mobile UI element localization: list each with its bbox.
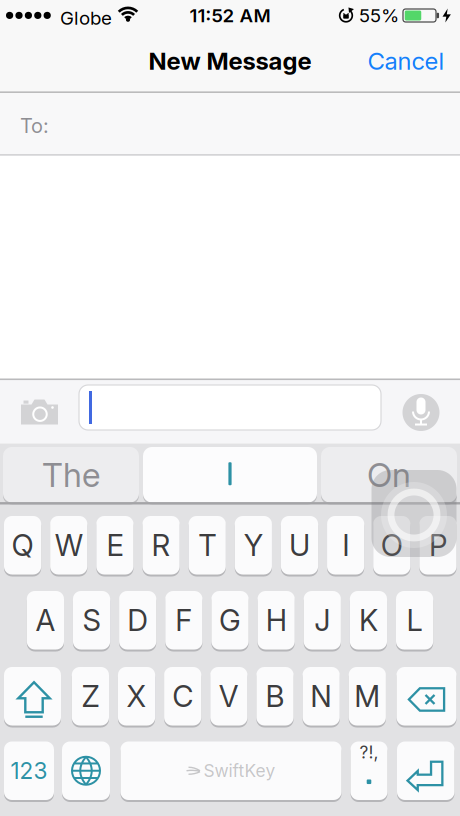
button[interactable]: Dictate (402, 394, 439, 431)
staticText: SwiftKey (203, 760, 275, 781)
staticText: 11:52 AM (189, 4, 270, 26)
staticText: To: (20, 114, 49, 138)
button[interactable]: F (165, 590, 202, 650)
button[interactable]: G (211, 590, 249, 650)
staticText: T (198, 528, 216, 562)
staticText: N (310, 679, 332, 713)
button[interactable]: S (73, 590, 110, 650)
staticText: New Message (148, 47, 311, 75)
button[interactable]: O (373, 515, 410, 575)
button[interactable]: C (164, 666, 201, 726)
staticText: Y (244, 528, 263, 562)
button[interactable]: Cancel (367, 47, 444, 75)
button[interactable]: Return (397, 740, 454, 801)
staticText: R (151, 528, 170, 562)
button[interactable]: U (281, 515, 318, 575)
button[interactable]: Punctuation (350, 740, 387, 801)
staticText: H (266, 603, 287, 637)
button[interactable]: R (142, 515, 180, 575)
staticText: S (83, 603, 101, 637)
staticText: B (265, 679, 284, 713)
button[interactable]: Delete (396, 666, 456, 726)
staticText: W (55, 528, 83, 562)
staticText: O (381, 528, 403, 562)
staticText: The (42, 455, 100, 494)
button[interactable]: W (50, 515, 87, 575)
button[interactable]: X (118, 666, 155, 726)
button[interactable]: Q (4, 515, 41, 575)
staticText: 55% (359, 4, 399, 26)
button[interactable]: Camera (21, 399, 58, 425)
button[interactable]: Space (120, 740, 341, 801)
button[interactable]: I (143, 446, 317, 503)
staticText: Q (12, 528, 34, 562)
staticText: On (367, 455, 411, 494)
button[interactable]: K (350, 590, 387, 650)
staticText: J (314, 603, 330, 637)
staticText: C (172, 679, 193, 713)
button[interactable]: AssistiveTouch (371, 471, 456, 559)
staticText: M (354, 679, 380, 713)
button[interactable]: J (304, 590, 341, 650)
button[interactable]: H (258, 590, 295, 650)
button[interactable]: B (256, 666, 294, 726)
staticText: Cancel (367, 47, 444, 75)
staticText: K (359, 603, 378, 637)
button[interactable]: Y (235, 515, 272, 575)
button[interactable]: N (303, 666, 340, 726)
button[interactable]: On (321, 446, 457, 503)
staticText: E (106, 528, 123, 562)
staticText: V (219, 679, 239, 713)
button[interactable]: P (419, 515, 456, 575)
button[interactable]: Shift (4, 666, 61, 726)
staticText: D (127, 603, 148, 637)
staticText: P (429, 528, 447, 562)
button[interactable]: Next keyboard (62, 740, 110, 801)
button[interactable]: I (327, 515, 364, 575)
button[interactable]: M (349, 666, 386, 726)
button[interactable]: T (189, 515, 226, 575)
staticText: X (126, 679, 146, 713)
staticText: ?!, (359, 742, 378, 762)
staticText: 123 (10, 757, 47, 784)
button[interactable]: V (210, 666, 247, 726)
staticText: G (219, 603, 241, 637)
staticText: L (407, 603, 423, 637)
staticText: Z (81, 679, 99, 713)
staticText: Globe (60, 7, 112, 29)
staticText: A (35, 603, 55, 637)
button[interactable]: A (27, 590, 64, 650)
button[interactable]: D (119, 590, 156, 650)
staticText: F (175, 603, 192, 637)
staticText: U (289, 528, 310, 562)
button[interactable]: The (3, 446, 139, 503)
staticText: I (342, 528, 349, 562)
button[interactable]: L (396, 590, 433, 650)
button[interactable]: Z (72, 666, 109, 726)
button[interactable]: E (96, 515, 133, 575)
button[interactable]: Numbers (4, 740, 54, 801)
